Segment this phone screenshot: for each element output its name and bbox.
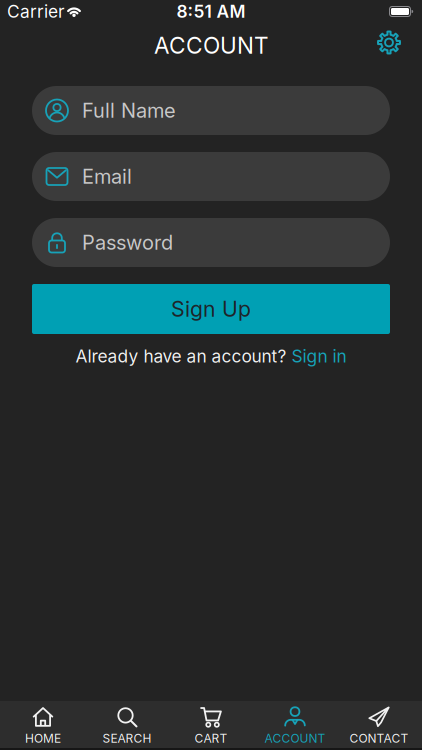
staticText: Sign in [291, 346, 346, 366]
staticText: Already have an account? [75, 346, 286, 366]
staticText: ACCOUNT [154, 32, 268, 59]
staticText: ACCOUNT [264, 731, 325, 746]
staticText: CART [194, 731, 227, 746]
staticText: Password [82, 231, 173, 254]
button[interactable]: Settings [377, 30, 401, 54]
button[interactable]: CONTACT [337, 701, 421, 750]
button[interactable]: Sign in [291, 346, 346, 366]
staticText: Sign Up [171, 296, 251, 322]
button[interactable]: Password [32, 218, 390, 267]
staticText: AM [216, 1, 245, 22]
button[interactable]: SEARCH [85, 701, 169, 750]
button[interactable]: CART [169, 701, 253, 750]
staticText: HOME [25, 731, 61, 746]
staticText: Carrier [7, 1, 65, 22]
staticText: 8:51 [176, 1, 211, 22]
staticText: CONTACT [349, 731, 408, 746]
staticText: SEARCH [102, 731, 151, 746]
button[interactable]: Sign Up [32, 284, 390, 334]
button[interactable]: HOME [1, 701, 85, 750]
staticText: Email [82, 165, 132, 188]
staticText: Full Name [82, 99, 176, 122]
button[interactable]: ACCOUNT [253, 701, 337, 750]
button[interactable]: Email [32, 152, 390, 201]
button[interactable]: Full Name [32, 86, 390, 135]
